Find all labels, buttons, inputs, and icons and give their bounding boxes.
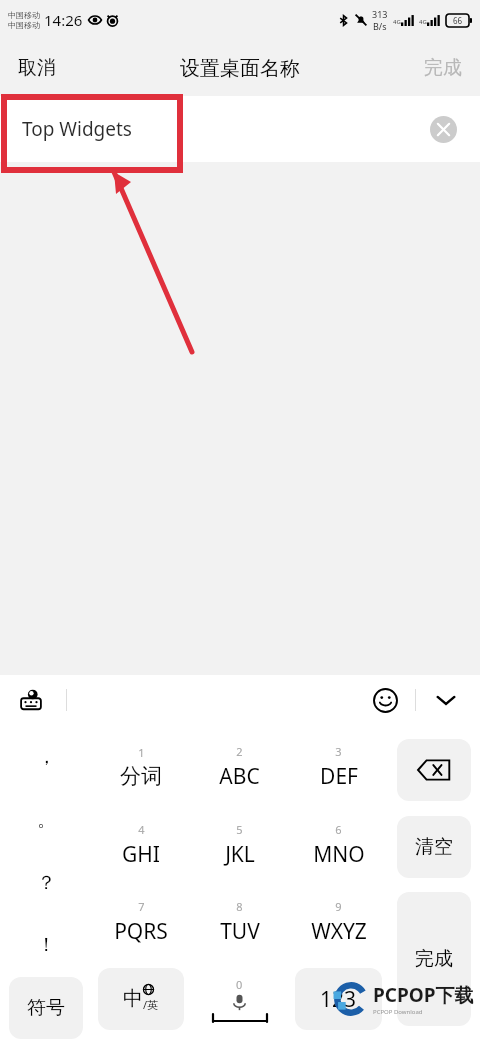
staticText: 设置桌面名称 bbox=[180, 56, 300, 81]
staticText: JKL bbox=[225, 840, 255, 869]
staticText: 4 bbox=[138, 822, 145, 837]
button[interactable]: 8 bbox=[190, 887, 289, 957]
staticText: 5 bbox=[236, 822, 243, 837]
button[interactable]: 符号 bbox=[9, 977, 83, 1039]
staticText: B/s bbox=[373, 20, 387, 32]
staticText: ！ bbox=[37, 933, 56, 957]
button[interactable]: Hide keyboard bbox=[428, 682, 464, 718]
staticText: 2 bbox=[236, 744, 243, 759]
staticText: 6 bbox=[335, 822, 342, 837]
staticText: GHI bbox=[122, 840, 160, 869]
button[interactable]: 7 bbox=[92, 887, 190, 957]
button[interactable]: 3 bbox=[289, 732, 388, 802]
button[interactable]: 中 bbox=[98, 968, 184, 1030]
staticText: ？ bbox=[37, 871, 56, 895]
staticText: 4G bbox=[419, 18, 427, 26]
staticText: 1 bbox=[138, 745, 145, 760]
button[interactable]: 4 bbox=[92, 810, 190, 880]
staticText: TUV bbox=[220, 917, 260, 946]
button[interactable]: Clear text bbox=[430, 116, 457, 143]
button[interactable]: 完成 bbox=[397, 892, 471, 1026]
button[interactable]: 。 bbox=[0, 789, 92, 851]
staticText: 清空 bbox=[415, 835, 453, 859]
staticText: 分词 bbox=[120, 763, 162, 789]
button[interactable] bbox=[397, 739, 471, 801]
staticText: 0 bbox=[236, 977, 243, 992]
staticText: 123 bbox=[320, 985, 357, 1014]
staticText: 中国移动 bbox=[8, 10, 40, 20]
staticText: 中国移动 bbox=[8, 20, 40, 30]
staticText: ABC bbox=[219, 762, 260, 791]
staticText: Top Widgets bbox=[22, 116, 132, 142]
staticText: PCPOP Download bbox=[373, 1008, 423, 1016]
staticText: WXYZ bbox=[311, 917, 367, 946]
staticText: PQRS bbox=[114, 917, 168, 946]
button[interactable]: 2 bbox=[190, 732, 289, 802]
button[interactable]: ？ bbox=[0, 852, 92, 914]
staticText: DEF bbox=[320, 762, 358, 791]
button[interactable]: 9 bbox=[289, 887, 388, 957]
button[interactable]: Top Widgets bbox=[0, 96, 480, 162]
staticText: 4G bbox=[393, 18, 401, 26]
staticText: 。 bbox=[37, 808, 56, 832]
staticText: 符号 bbox=[27, 996, 65, 1020]
staticText: 中 bbox=[123, 986, 143, 1011]
staticText: /英 bbox=[143, 997, 159, 1012]
staticText: 14:26 bbox=[44, 10, 83, 30]
button[interactable]: ， bbox=[0, 726, 92, 788]
button[interactable]: 完成 bbox=[406, 44, 480, 92]
staticText: 66 bbox=[453, 15, 463, 26]
button[interactable]: 123 bbox=[295, 968, 382, 1030]
staticText: 3 bbox=[335, 744, 342, 759]
staticText: PCPOP下载 bbox=[373, 982, 474, 1008]
staticText: 7 bbox=[138, 899, 145, 914]
staticText: 完成 bbox=[415, 947, 453, 971]
staticText: MNO bbox=[313, 840, 365, 869]
staticText: ， bbox=[37, 745, 56, 769]
button[interactable]: 5 bbox=[190, 810, 289, 880]
button[interactable]: 取消 bbox=[0, 44, 74, 92]
staticText: 313 bbox=[372, 8, 388, 20]
staticText: 9 bbox=[335, 899, 342, 914]
staticText: 完成 bbox=[424, 56, 462, 80]
button[interactable]: Switch input language bbox=[14, 683, 48, 717]
staticText: 8 bbox=[236, 899, 243, 914]
button[interactable]: 6 bbox=[289, 810, 388, 880]
button[interactable]: Emoji bbox=[368, 683, 402, 717]
button[interactable]: 1 bbox=[92, 732, 190, 802]
staticText: 取消 bbox=[18, 56, 56, 80]
button[interactable]: 清空 bbox=[397, 816, 471, 878]
button[interactable]: ！ bbox=[0, 914, 92, 976]
button[interactable]: Space / Voice input bbox=[190, 966, 289, 1032]
